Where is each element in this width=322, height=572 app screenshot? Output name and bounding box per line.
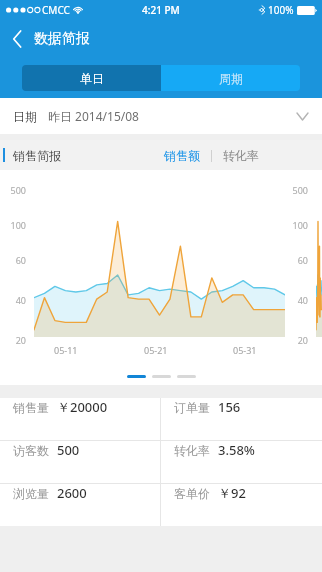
staticText: 05-21 (144, 344, 168, 356)
staticText: 2600 (57, 484, 87, 502)
staticText: 销售量 (13, 400, 49, 415)
button[interactable]: Back (0, 22, 34, 56)
staticText: 4:21 PM (142, 3, 180, 17)
button[interactable]: 单日 (22, 65, 161, 91)
staticText: 昨日 2014/15/08 (48, 108, 139, 124)
staticText: 销售简报 (13, 148, 61, 163)
staticText: 500 (282, 184, 308, 196)
staticText: 60 (0, 254, 26, 266)
staticText: ￥20000 (57, 398, 108, 416)
staticText: 3.58% (218, 441, 255, 459)
staticText: 100% (268, 3, 294, 17)
staticText: 日期 (13, 109, 37, 124)
button[interactable]: 客单价 (161, 484, 322, 502)
staticText: 访客数 (13, 443, 49, 458)
staticText: 40 (0, 294, 26, 306)
staticText: ￥92 (218, 484, 246, 502)
staticText: 05-11 (54, 344, 78, 356)
staticText: 100 (282, 219, 308, 231)
button[interactable]: 转化率 (161, 441, 322, 459)
staticText: 数据简报 (34, 30, 90, 48)
staticText: 20 (282, 334, 308, 346)
staticText: 客单价 (174, 486, 210, 501)
staticText: 100 (0, 219, 26, 231)
button[interactable]: 访客数 (0, 441, 160, 459)
button[interactable]: 转化率 (219, 148, 263, 163)
staticText: 浏览量 (13, 486, 49, 501)
button[interactable]: 销售量 (0, 398, 160, 416)
button[interactable]: 销售额 (160, 148, 204, 163)
staticText: 60 (282, 254, 308, 266)
button[interactable]: 日期 (0, 98, 322, 134)
staticText: 销售额 (164, 148, 200, 163)
staticText: 156 (218, 398, 241, 416)
button[interactable]: 订单量 (161, 398, 322, 416)
staticText: 05-31 (233, 344, 257, 356)
staticText: 单日 (80, 71, 104, 86)
staticText: CMCC (42, 3, 70, 17)
staticText: 周期 (219, 71, 243, 86)
button[interactable]: 周期 (161, 65, 300, 91)
staticText: 订单量 (174, 400, 210, 415)
staticText: 500 (57, 441, 80, 459)
staticText: 500 (0, 184, 26, 196)
staticText: 转化率 (174, 443, 210, 458)
staticText: 转化率 (223, 148, 259, 163)
button[interactable]: 浏览量 (0, 484, 160, 502)
staticText: 20 (0, 334, 26, 346)
staticText: 40 (282, 294, 308, 306)
